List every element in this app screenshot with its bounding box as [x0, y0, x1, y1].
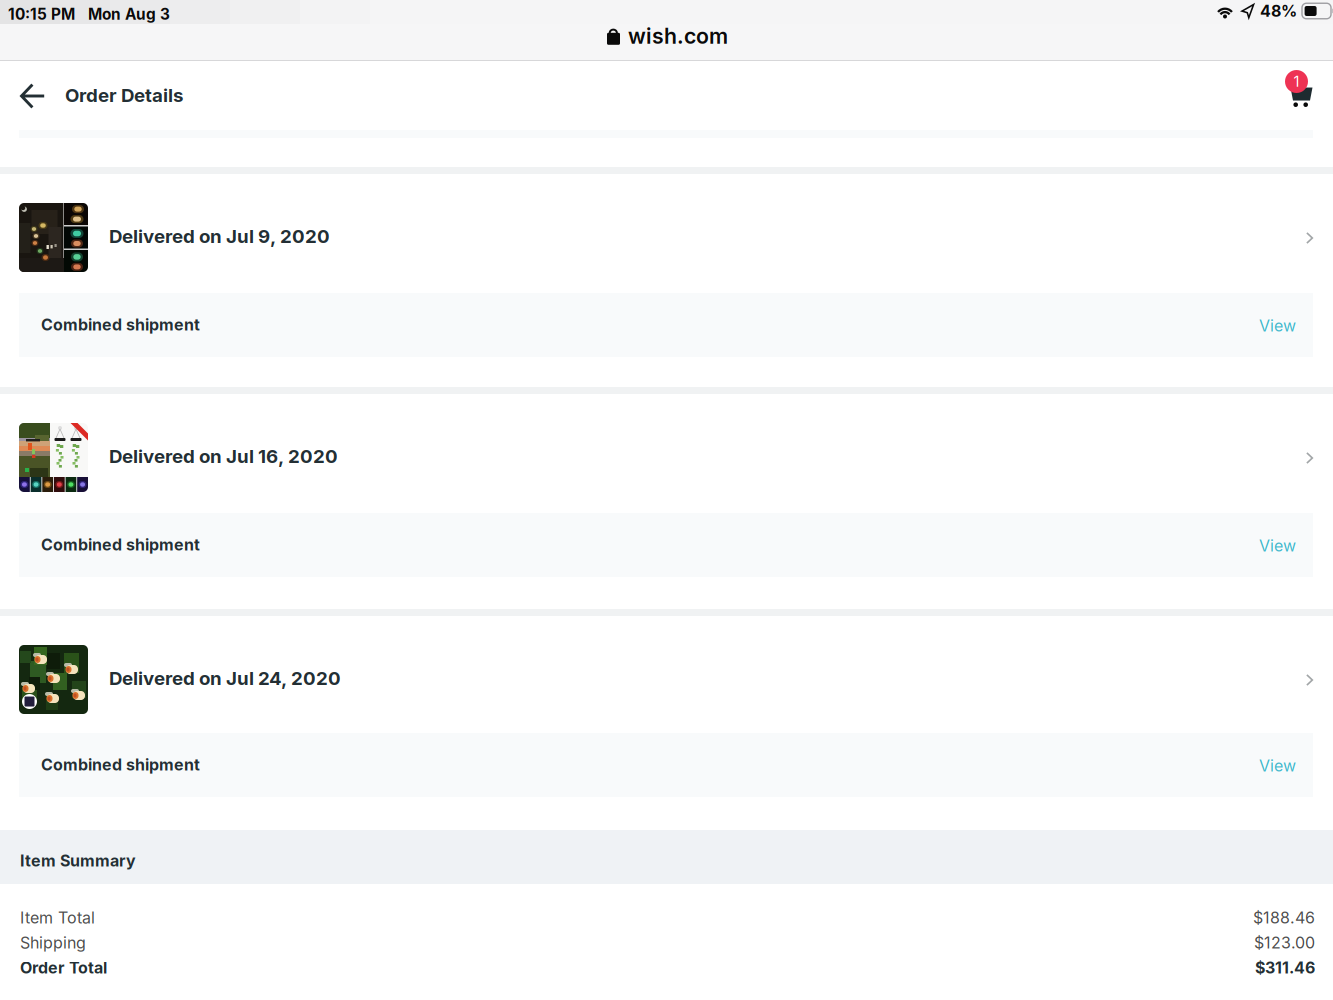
button[interactable]: Cart, 1 item [1275, 67, 1323, 117]
staticText: Order Details [65, 84, 183, 107]
staticText: Item Total [20, 908, 95, 927]
staticText: Combined shipment [41, 755, 200, 774]
staticText: wish.com [628, 23, 728, 49]
staticText: 1 [1293, 73, 1299, 90]
staticText: Shipping [20, 933, 86, 952]
button[interactable]: Delivered on Jul 16, 2020 [0, 394, 1333, 513]
button[interactable]: Delivered on Jul 9, 2020 [0, 174, 1333, 293]
button[interactable]: Delivered on Jul 24, 2020 [0, 616, 1333, 733]
staticText: Combined shipment [41, 315, 200, 334]
staticText: Delivered on Jul 24, 2020 [109, 667, 341, 690]
staticText: Combined shipment [41, 535, 200, 554]
staticText: 10:15 PM [8, 5, 75, 24]
staticText: 48% [1260, 1, 1297, 21]
staticText: Order Total [20, 958, 107, 977]
staticText: View [1259, 316, 1296, 335]
button[interactable]: Back [11, 74, 55, 118]
staticText: Mon Aug 3 [88, 5, 170, 24]
staticText: Delivered on Jul 16, 2020 [109, 445, 338, 468]
staticText: $123.00 [1254, 933, 1315, 952]
staticText: $311.46 [1255, 958, 1315, 977]
button[interactable]: Combined shipment [0, 513, 1333, 577]
staticText: Delivered on Jul 9, 2020 [109, 225, 330, 248]
staticText: View [1259, 536, 1296, 555]
staticText: Item Summary [20, 851, 136, 870]
button[interactable]: Combined shipment [0, 293, 1333, 357]
staticText: View [1259, 756, 1296, 775]
staticText: $188.46 [1253, 908, 1315, 927]
button[interactable]: Combined shipment [0, 733, 1333, 797]
